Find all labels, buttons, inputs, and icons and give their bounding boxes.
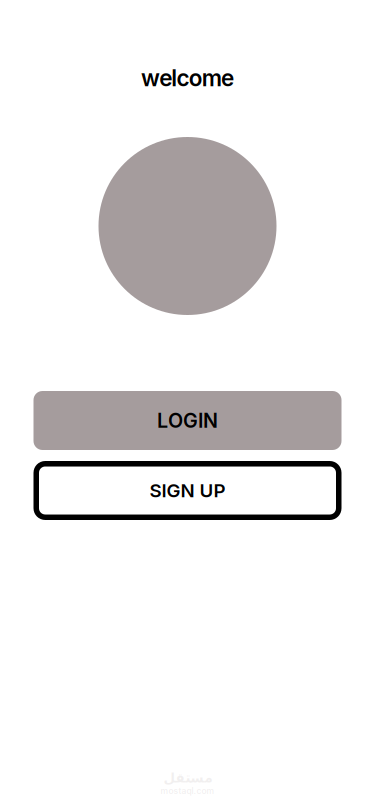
- staticText: mostaql.com: [160, 786, 214, 796]
- staticText: LOGIN: [157, 409, 218, 432]
- staticText: welcome: [141, 64, 234, 92]
- button[interactable]: LOGIN: [33, 391, 341, 450]
- staticText: SIGN UP: [149, 479, 225, 502]
- staticText: مستقل: [163, 770, 212, 786]
- button[interactable]: SIGN UP: [33, 461, 341, 520]
